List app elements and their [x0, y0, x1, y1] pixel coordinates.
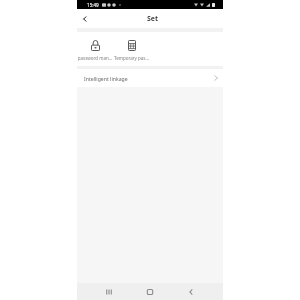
staticText: password mana... — [77, 55, 113, 61]
button[interactable]: Home — [138, 283, 162, 300]
button[interactable]: password mana... — [77, 32, 113, 66]
staticText: 15:49 — [87, 2, 99, 8]
button[interactable]: Recent apps — [97, 283, 121, 300]
button[interactable]: Back — [77, 9, 93, 28]
button[interactable]: Intelligent linkage — [77, 69, 223, 87]
staticText: Intelligent linkage — [84, 75, 128, 82]
button[interactable]: Temporary pass... — [113, 32, 150, 66]
button[interactable]: Back — [179, 283, 203, 300]
staticText: Set — [147, 14, 159, 24]
staticText: Temporary pass... — [113, 55, 150, 61]
